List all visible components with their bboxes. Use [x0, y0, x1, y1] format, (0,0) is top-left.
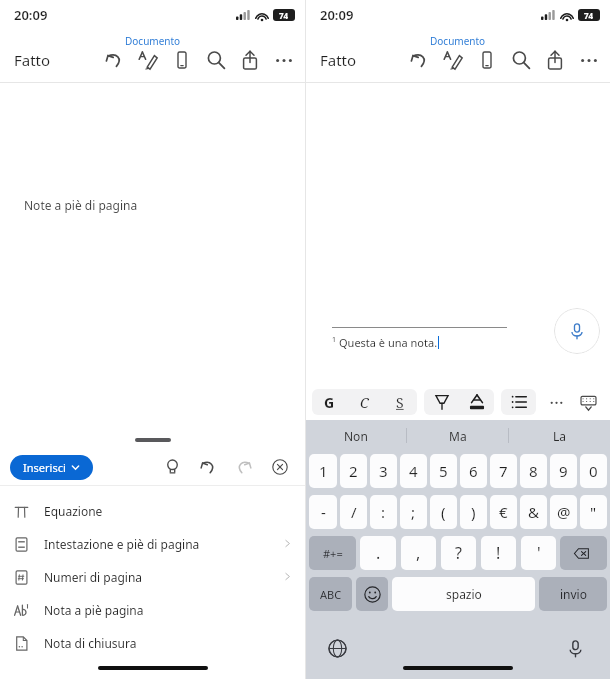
- staticText: 2: [349, 461, 358, 481]
- button[interactable]: Colore testo: [459, 389, 494, 415]
- button[interactable]: .: [360, 536, 396, 570]
- button[interactable]: Grassetto: [312, 389, 347, 415]
- button[interactable]: Markup: [436, 43, 470, 77]
- button[interactable]: ,: [401, 536, 436, 570]
- button[interactable]: €: [490, 495, 517, 529]
- button[interactable]: Elenco: [501, 389, 536, 415]
- button[interactable]: &: [520, 495, 547, 529]
- button[interactable]: Phone view: [470, 43, 504, 77]
- staticText: ;: [411, 502, 416, 522]
- button[interactable]: 1: [309, 454, 337, 488]
- button[interactable]: La: [509, 420, 610, 451]
- button[interactable]: 5: [430, 454, 457, 488]
- button[interactable]: ABC: [309, 577, 352, 611]
- button[interactable]: Markup: [131, 43, 165, 77]
- button[interactable]: Undo: [402, 43, 436, 77]
- staticText: -: [321, 502, 326, 522]
- button[interactable]: Nota di chiusura: [0, 626, 305, 659]
- button[interactable]: Fatto: [314, 46, 363, 74]
- button[interactable]: Share: [233, 43, 267, 77]
- staticText: Fatto: [14, 50, 51, 70]
- button[interactable]: 6: [460, 454, 487, 488]
- button[interactable]: More: [267, 43, 301, 77]
- button[interactable]: Dettatura: [562, 635, 588, 661]
- button[interactable]: Intestazione e piè di pagina: [0, 527, 305, 560]
- button[interactable]: :: [370, 495, 397, 529]
- button[interactable]: Ripristina: [229, 452, 259, 482]
- button[interactable]: Dettatura: [554, 308, 600, 354]
- button[interactable]: Numeri di pagina: [0, 560, 305, 593]
- button[interactable]: 2: [340, 454, 367, 488]
- staticText: &: [528, 502, 539, 522]
- button[interactable]: spazio: [392, 577, 535, 611]
- staticText: Intestazione e piè di pagina: [44, 536, 200, 552]
- staticText: 20:09: [14, 6, 48, 24]
- button[interactable]: Search: [504, 43, 538, 77]
- button[interactable]: Nota a piè pagina: [0, 593, 305, 626]
- button[interactable]: (: [430, 495, 457, 529]
- button[interactable]: 3: [370, 454, 397, 488]
- button[interactable]: Annulla: [193, 452, 223, 482]
- button[interactable]: ?: [441, 536, 476, 570]
- staticText: .: [376, 542, 381, 564]
- staticText: 8: [529, 461, 538, 481]
- staticText: 6: [469, 461, 478, 481]
- staticText: ?: [455, 542, 462, 564]
- button[interactable]: Evidenziatore: [424, 389, 459, 415]
- button[interactable]: Nascondi tastiera: [572, 386, 604, 418]
- button[interactable]: Non: [306, 420, 406, 451]
- staticText: ": [590, 502, 597, 522]
- button[interactable]: Sottolineato: [382, 389, 417, 415]
- button[interactable]: /: [340, 495, 367, 529]
- button[interactable]: @: [550, 495, 577, 529]
- button[interactable]: 0: [580, 454, 607, 488]
- staticText: Numeri di pagina: [44, 569, 143, 585]
- button[interactable]: 4: [400, 454, 427, 488]
- button[interactable]: 9: [550, 454, 577, 488]
- staticText: 0: [589, 461, 598, 481]
- button[interactable]: More: [572, 43, 606, 77]
- button[interactable]: Fatto: [8, 46, 57, 74]
- button[interactable]: Corsivo: [347, 389, 382, 415]
- button[interactable]: ;: [400, 495, 427, 529]
- button[interactable]: Equazione: [0, 494, 305, 527]
- button[interactable]: Phone view: [165, 43, 199, 77]
- staticText: Ma: [449, 428, 467, 444]
- staticText: 74: [584, 10, 594, 21]
- button[interactable]: ": [580, 495, 607, 529]
- staticText: invio: [560, 586, 587, 602]
- staticText: S: [396, 393, 404, 412]
- button[interactable]: 7: [490, 454, 517, 488]
- button[interactable]: Altro: [540, 386, 572, 418]
- staticText: Nota di chiusura: [44, 635, 137, 651]
- staticText: 74: [279, 10, 289, 21]
- button[interactable]: ': [521, 536, 556, 570]
- button[interactable]: !: [481, 536, 516, 570]
- button[interactable]: Share: [538, 43, 572, 77]
- button[interactable]: Cambia lingua: [324, 635, 350, 661]
- button[interactable]: Inserisci: [10, 455, 93, 480]
- staticText: :: [381, 502, 386, 522]
- staticText: Equazione: [44, 503, 103, 519]
- staticText: Documento: [430, 34, 486, 48]
- staticText: ABC: [320, 587, 342, 602]
- staticText: C: [360, 393, 369, 412]
- button[interactable]: ): [460, 495, 487, 529]
- staticText: 9: [559, 461, 568, 481]
- button[interactable]: -: [309, 495, 337, 529]
- button[interactable]: invio: [539, 577, 607, 611]
- staticText: Note a piè di pagina: [24, 197, 138, 213]
- button[interactable]: Undo: [97, 43, 131, 77]
- button[interactable]: Chiudi: [265, 452, 295, 482]
- button[interactable]: Ma: [407, 420, 508, 451]
- staticText: Fatto: [320, 50, 357, 70]
- staticText: Nota a piè pagina: [44, 602, 144, 618]
- button[interactable]: Emoji: [356, 577, 388, 611]
- button[interactable]: 8: [520, 454, 547, 488]
- button[interactable]: Suggerimenti: [157, 452, 187, 482]
- staticText: !: [496, 542, 501, 564]
- button[interactable]: Search: [199, 43, 233, 77]
- staticText: Inserisci: [23, 460, 66, 475]
- button[interactable]: #+=: [309, 536, 356, 570]
- button[interactable]: Backspace: [560, 536, 607, 570]
